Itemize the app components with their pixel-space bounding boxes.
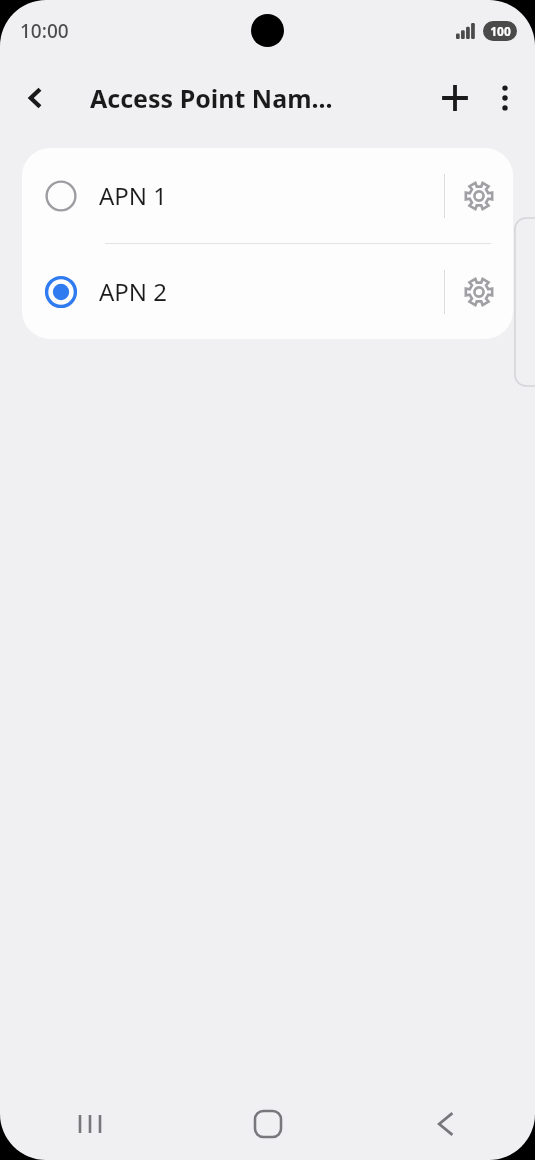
button[interactable]: APN 2 <box>22 244 513 339</box>
staticText: 100 <box>490 23 511 39</box>
button[interactable]: More options <box>483 72 527 124</box>
staticText: APN 2 <box>99 275 444 308</box>
button[interactable]: Back <box>357 1088 535 1160</box>
button[interactable]: APN 2 settings <box>445 258 513 326</box>
staticText: 10:00 <box>20 18 69 44</box>
staticText: APN 1 <box>99 179 444 212</box>
button[interactable]: APN 1 <box>22 148 513 243</box>
button[interactable]: Back <box>10 72 62 124</box>
button[interactable]: Home <box>179 1088 357 1160</box>
staticText: Access Point Nam... <box>90 81 333 115</box>
button[interactable]: Recent apps <box>0 1088 179 1160</box>
button[interactable]: APN 1 settings <box>445 162 513 230</box>
button[interactable]: Add APN <box>429 72 481 124</box>
